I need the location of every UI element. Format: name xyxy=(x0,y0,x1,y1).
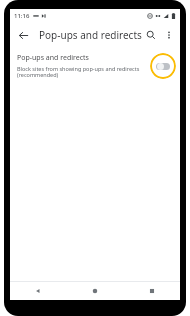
button[interactable]: Back xyxy=(13,25,33,45)
button[interactable]: Home xyxy=(66,282,123,300)
button[interactable]: Back xyxy=(10,282,66,300)
button[interactable]: Recent apps xyxy=(123,282,180,300)
staticText: Pop-ups and redirects xyxy=(39,28,142,42)
button[interactable]: Pop-ups and redirects xyxy=(10,48,180,84)
button[interactable]: Pop-ups and redirects toggle xyxy=(150,53,176,79)
staticText: Block sites from showing pop-ups and red… xyxy=(17,65,146,79)
staticText: 11:16 xyxy=(14,12,30,20)
button[interactable]: More options xyxy=(161,26,177,44)
staticText: Pop-ups and redirects xyxy=(17,53,89,63)
button[interactable]: Search xyxy=(142,26,160,44)
